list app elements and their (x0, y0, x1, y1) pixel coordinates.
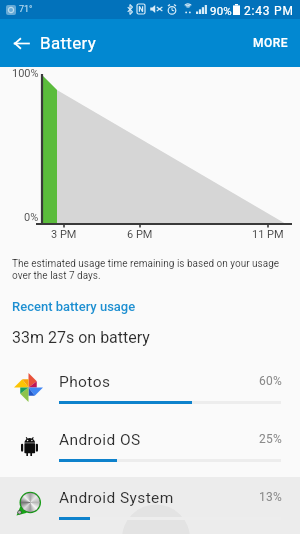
staticText: 6 PM (127, 228, 153, 241)
staticText: 100% (12, 67, 39, 80)
button[interactable]: Recent battery usage (0, 294, 300, 318)
staticText: Recent battery usage (12, 299, 136, 314)
staticText: 33m 27s on battery (12, 328, 150, 347)
button[interactable]: Navigate up (4, 19, 38, 67)
staticText: Android System (59, 489, 174, 507)
staticText: Android OS (59, 431, 141, 449)
staticText: MORE (253, 36, 289, 50)
staticText: 25% (259, 432, 283, 446)
staticText: Battery (40, 33, 97, 53)
staticText: 11 PM (252, 228, 284, 241)
staticText: 0% (24, 211, 39, 224)
staticText: 60% (259, 374, 283, 388)
staticText: 13% (259, 490, 283, 504)
staticText: The estimated usage time remaining is ba… (12, 258, 280, 270)
staticText: 71° (19, 4, 33, 15)
staticText: 3 PM (51, 228, 77, 241)
button[interactable]: Photos (0, 361, 300, 419)
staticText: Photos (59, 373, 111, 391)
staticText: 90% (210, 4, 232, 17)
staticText: 2:43 PM (244, 4, 294, 18)
button[interactable]: MORE (242, 19, 300, 67)
staticText: over the last 7 days. (12, 270, 101, 282)
button[interactable]: Android System (0, 477, 300, 534)
button[interactable]: Android OS (0, 419, 300, 477)
